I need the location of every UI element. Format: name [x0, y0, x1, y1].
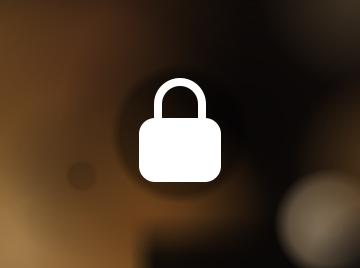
button[interactable]: Unlock content	[0, 0, 360, 268]
